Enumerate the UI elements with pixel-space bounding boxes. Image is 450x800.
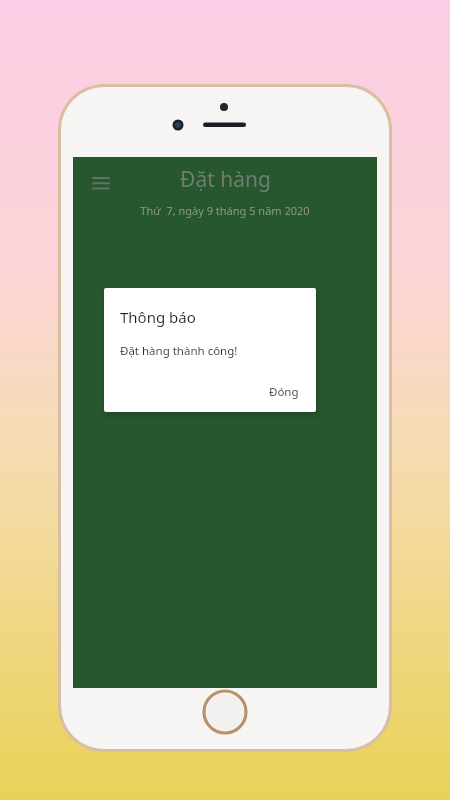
staticText: Đặt hàng	[180, 165, 271, 194]
button[interactable]: Đóng	[260, 378, 308, 406]
button[interactable]: Menu	[81, 163, 121, 203]
staticText: Thứ 7, ngày 9 tháng 5 năm 2020	[140, 203, 310, 218]
staticText: Đặt hàng thành công!	[120, 343, 238, 359]
staticText: Thông báo	[120, 307, 196, 327]
staticText: Đóng	[269, 384, 299, 400]
